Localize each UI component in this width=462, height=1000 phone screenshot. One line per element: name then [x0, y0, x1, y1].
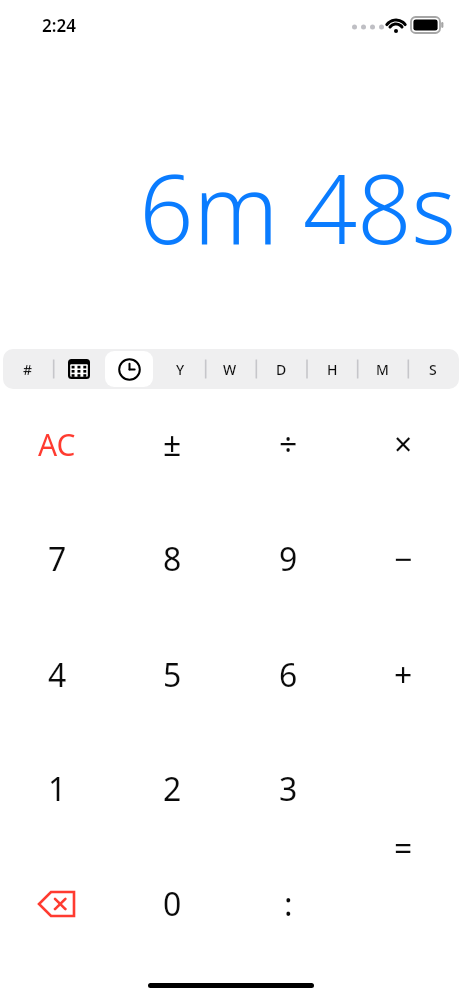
button[interactable]: #: [3, 349, 53, 389]
staticText: 6m 48s: [139, 142, 456, 268]
button[interactable]: S: [408, 349, 458, 389]
staticText: 2: [163, 767, 182, 811]
staticText: H: [327, 360, 338, 379]
button[interactable]: ×: [358, 408, 448, 480]
staticText: 7: [48, 537, 67, 581]
button[interactable]: H: [307, 349, 357, 389]
staticText: 0: [163, 882, 182, 926]
staticText: 1: [48, 767, 67, 811]
button[interactable]: Backspace: [12, 868, 102, 940]
staticText: W: [223, 360, 237, 379]
button[interactable]: 3: [243, 753, 333, 825]
staticText: ×: [394, 422, 413, 466]
staticText: M: [376, 360, 389, 379]
button[interactable]: 1: [12, 753, 102, 825]
button[interactable]: −: [358, 523, 448, 595]
button[interactable]: 2: [127, 753, 217, 825]
button[interactable]: 6: [243, 639, 333, 711]
staticText: 2:24: [42, 14, 76, 37]
staticText: AC: [38, 424, 76, 465]
staticText: 5: [163, 653, 182, 697]
button[interactable]: ÷: [243, 408, 333, 480]
button[interactable]: 0: [127, 868, 217, 940]
button[interactable]: 8: [127, 523, 217, 595]
staticText: D: [276, 360, 287, 379]
button[interactable]: AC: [12, 408, 102, 480]
button[interactable]: ±: [127, 408, 217, 480]
button[interactable]: 5: [127, 639, 217, 711]
button[interactable]: M: [357, 349, 407, 389]
staticText: =: [394, 826, 413, 870]
staticText: ÷: [279, 422, 298, 466]
button[interactable]: 7: [12, 523, 102, 595]
staticText: 6: [279, 653, 298, 697]
staticText: #: [23, 360, 33, 379]
button[interactable]: Calendar: [54, 349, 104, 389]
staticText: +: [394, 653, 413, 697]
staticText: S: [429, 360, 437, 379]
staticText: 4: [48, 653, 67, 697]
button[interactable]: Y: [155, 349, 205, 389]
button[interactable]: :: [243, 868, 333, 940]
staticText: Y: [176, 360, 185, 379]
button[interactable]: =: [358, 812, 448, 884]
staticText: 3: [279, 767, 298, 811]
staticText: 8: [163, 537, 182, 581]
button[interactable]: +: [358, 639, 448, 711]
button[interactable]: 9: [243, 523, 333, 595]
staticText: −: [394, 537, 413, 581]
staticText: ±: [163, 422, 182, 466]
button[interactable]: W: [205, 349, 255, 389]
button[interactable]: Clock: [104, 349, 154, 389]
button[interactable]: D: [256, 349, 306, 389]
staticText: 9: [279, 537, 298, 581]
staticText: :: [284, 882, 293, 926]
button[interactable]: 4: [12, 639, 102, 711]
